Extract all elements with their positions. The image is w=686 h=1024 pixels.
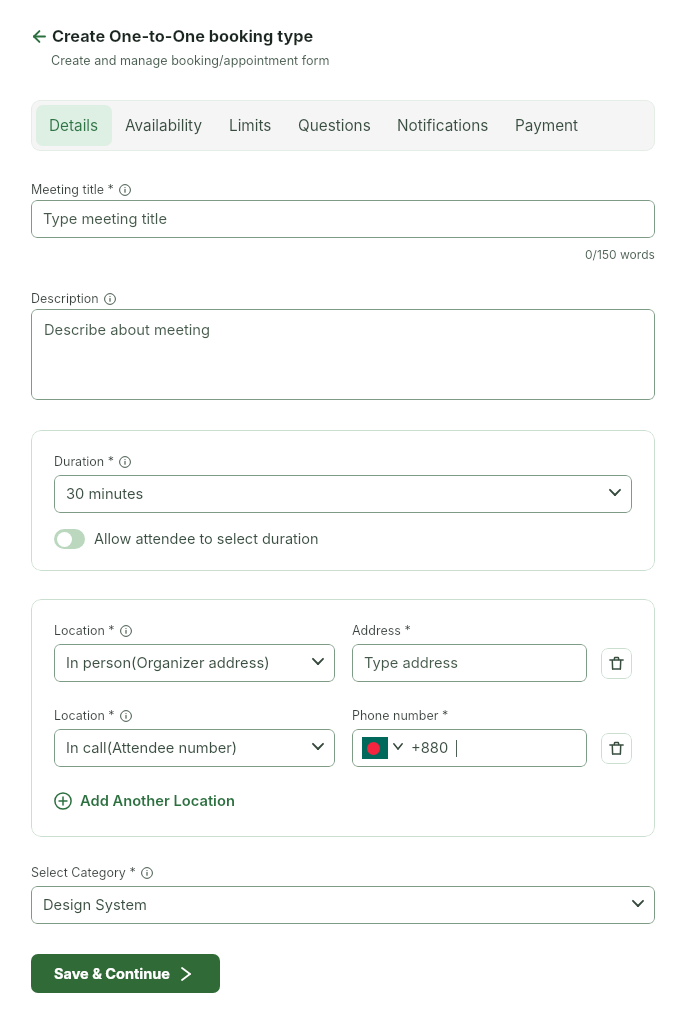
staticText: Details: [49, 116, 99, 135]
button[interactable]: Add Another Location: [54, 792, 235, 810]
button[interactable]: Type meeting title: [31, 200, 655, 238]
staticText: Add Another Location: [80, 792, 235, 810]
button[interactable]: Notifications: [384, 105, 502, 146]
staticText: Phone number *: [352, 708, 449, 723]
staticText: Questions: [298, 116, 371, 135]
staticText: Address *: [352, 623, 411, 638]
staticText: +880: [411, 739, 449, 757]
staticText: Availability: [125, 116, 203, 135]
button[interactable]: Limits: [216, 105, 285, 146]
button[interactable]: Questions: [285, 105, 384, 146]
button[interactable]: Delete location: [601, 733, 632, 764]
button[interactable]: Save & Continue: [31, 954, 220, 993]
button[interactable]: Design System: [31, 886, 655, 924]
staticText: Notifications: [397, 116, 489, 135]
button[interactable]: +880: [352, 729, 587, 767]
staticText: Describe about meeting: [44, 321, 211, 339]
staticText: Allow attendee to select duration: [94, 530, 319, 548]
staticText: Save & Continue: [54, 965, 170, 983]
staticText: Design System: [43, 896, 632, 914]
staticText: In person(Organizer address): [66, 654, 312, 672]
staticText: Type address: [364, 654, 576, 672]
staticText: Create One-to-One booking type: [52, 26, 314, 46]
button[interactable]: Describe about meeting: [31, 309, 655, 400]
staticText: Description: [31, 291, 99, 306]
button[interactable]: Availability: [112, 105, 216, 146]
button[interactable]: Delete location: [601, 648, 632, 679]
staticText: Location *: [54, 708, 115, 723]
staticText: Select Category *: [31, 865, 136, 880]
staticText: Type meeting title: [43, 210, 644, 228]
button[interactable]: Payment: [502, 105, 592, 146]
button[interactable]: In call(Attendee number): [54, 729, 335, 767]
staticText: In call(Attendee number): [66, 739, 312, 757]
staticText: Location *: [54, 623, 115, 638]
button[interactable]: 30 minutes: [54, 475, 632, 513]
staticText: Payment: [515, 116, 579, 135]
button[interactable]: Type address: [352, 644, 587, 682]
staticText: Limits: [229, 116, 272, 135]
staticText: Create and manage booking/appointment fo…: [51, 53, 330, 68]
staticText: 0/150 words: [585, 247, 655, 262]
staticText: Meeting title *: [31, 182, 114, 197]
staticText: 30 minutes: [66, 485, 609, 503]
button[interactable]: In person(Organizer address): [54, 644, 335, 682]
staticText: Duration *: [54, 454, 114, 469]
button[interactable]: Back: [33, 30, 46, 43]
button[interactable]: Details: [36, 105, 112, 146]
button[interactable]: Allow attendee to select duration: [54, 529, 319, 549]
